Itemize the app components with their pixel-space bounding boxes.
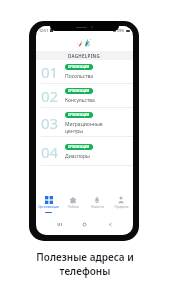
staticText: ОРГАНИЗАЦИИ bbox=[68, 113, 90, 117]
button[interactable]: 01 bbox=[36, 60, 133, 84]
other: Recents bbox=[57, 222, 62, 227]
staticText: Консульства bbox=[65, 97, 95, 104]
staticText: Организации bbox=[38, 205, 59, 209]
staticText: Полезные адреса и телефоны bbox=[36, 250, 134, 278]
button[interactable]: 02 bbox=[36, 84, 133, 108]
staticText: 03 bbox=[41, 113, 59, 133]
staticText: 12:51 bbox=[39, 28, 49, 33]
staticText: 59% bbox=[117, 28, 125, 33]
button[interactable]: Работа bbox=[61, 195, 85, 209]
button[interactable]: 03 bbox=[36, 108, 133, 137]
staticText: 04 bbox=[41, 142, 59, 162]
staticText: 02 bbox=[41, 86, 59, 106]
staticText: ОРГАНИЗАЦИИ bbox=[68, 145, 90, 149]
staticText: Диаспоры bbox=[65, 153, 90, 160]
staticText: Профиль bbox=[114, 205, 129, 209]
staticText: 01 bbox=[41, 62, 59, 82]
staticText: Посольства bbox=[65, 73, 94, 80]
button[interactable]: Организации bbox=[36, 195, 61, 213]
button[interactable]: Профиль bbox=[109, 195, 133, 209]
staticText: DAGHELPING bbox=[68, 53, 101, 59]
button[interactable]: Новости bbox=[85, 195, 109, 209]
staticText: Новости bbox=[91, 205, 104, 209]
button[interactable]: 04 bbox=[36, 137, 133, 166]
staticText: Миграционные центры bbox=[65, 121, 103, 134]
staticText: ОРГАНИЗАЦИИ bbox=[68, 65, 90, 69]
staticText: Работа bbox=[68, 205, 79, 209]
staticText: ОРГАНИЗАЦИИ bbox=[68, 89, 90, 93]
other: Home bbox=[82, 222, 87, 227]
other: Back bbox=[108, 222, 113, 227]
